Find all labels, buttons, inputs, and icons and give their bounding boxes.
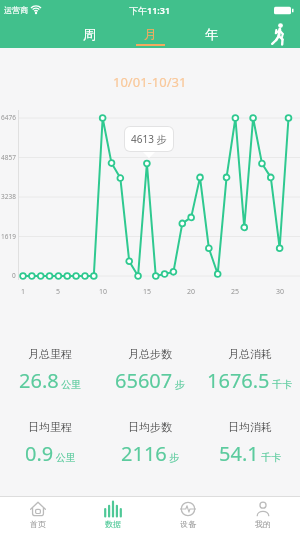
staticText: 25	[231, 287, 240, 297]
button[interactable]: 设备	[150, 497, 225, 533]
staticText: 4857	[1, 153, 16, 162]
staticText: 3238	[1, 192, 16, 201]
staticText: 数据	[105, 519, 121, 529]
staticText: 10/01-10/31	[113, 73, 187, 91]
button[interactable]: 周	[59, 20, 120, 48]
staticText: 5	[56, 287, 61, 297]
staticText: 4613 步	[131, 132, 167, 146]
staticText: 6476	[1, 113, 16, 122]
button[interactable]: 年	[181, 20, 242, 48]
staticText: 运营商	[4, 5, 28, 15]
staticText: 1619	[1, 232, 16, 241]
staticText: 月总步数	[128, 347, 172, 361]
staticText: 我的	[255, 519, 271, 529]
staticText: 0.9 公里	[25, 440, 76, 467]
staticText: 26.8 公里	[19, 367, 82, 394]
staticText: 20	[187, 287, 196, 297]
staticText: 日均消耗	[228, 420, 272, 434]
staticText: 30	[276, 287, 285, 297]
staticText: 年	[205, 26, 218, 42]
staticText: 10	[99, 287, 108, 297]
staticText: 65607 步	[115, 367, 185, 394]
staticText: 月总里程	[28, 347, 72, 361]
staticText: 0	[12, 271, 16, 280]
staticText: 15	[143, 287, 152, 297]
staticText: 1676.5 千卡	[207, 367, 293, 394]
staticText: 下午11:31	[129, 4, 171, 16]
button[interactable]: 首页	[0, 497, 75, 533]
staticText: 月总消耗	[228, 347, 272, 361]
staticText: 1	[21, 287, 26, 297]
staticText: 设备	[180, 519, 196, 529]
button[interactable]: 数据	[75, 497, 150, 533]
staticText: 首页	[30, 519, 46, 529]
staticText: 日均步数	[128, 420, 172, 434]
button[interactable]: 月	[120, 20, 181, 48]
staticText: 月	[144, 26, 157, 42]
button[interactable]: 我的	[225, 497, 300, 533]
staticText: 周	[83, 26, 96, 42]
staticText: 54.1 千卡	[219, 440, 282, 467]
staticText: 日均里程	[28, 420, 72, 434]
staticText: 2116 步	[121, 440, 180, 467]
button[interactable]	[269, 22, 289, 47]
